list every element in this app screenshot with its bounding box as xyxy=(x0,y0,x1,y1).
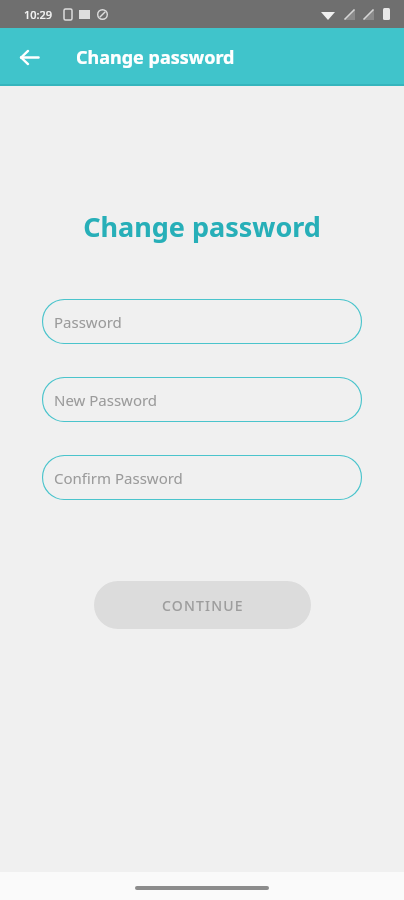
staticText: New Password xyxy=(54,390,158,410)
staticText: Change password xyxy=(76,45,235,70)
staticText: Password xyxy=(54,312,122,332)
button[interactable]: New Password xyxy=(42,377,362,422)
button[interactable]: Password xyxy=(42,299,362,344)
button[interactable]: Confirm Password xyxy=(42,455,362,500)
staticText: CONTINUE xyxy=(162,596,244,615)
staticText: Change password xyxy=(0,208,404,245)
staticText: Confirm Password xyxy=(54,468,183,488)
button[interactable]: CONTINUE xyxy=(94,581,311,629)
staticText: 10:29 xyxy=(24,7,53,22)
button[interactable]: Back xyxy=(10,38,48,76)
